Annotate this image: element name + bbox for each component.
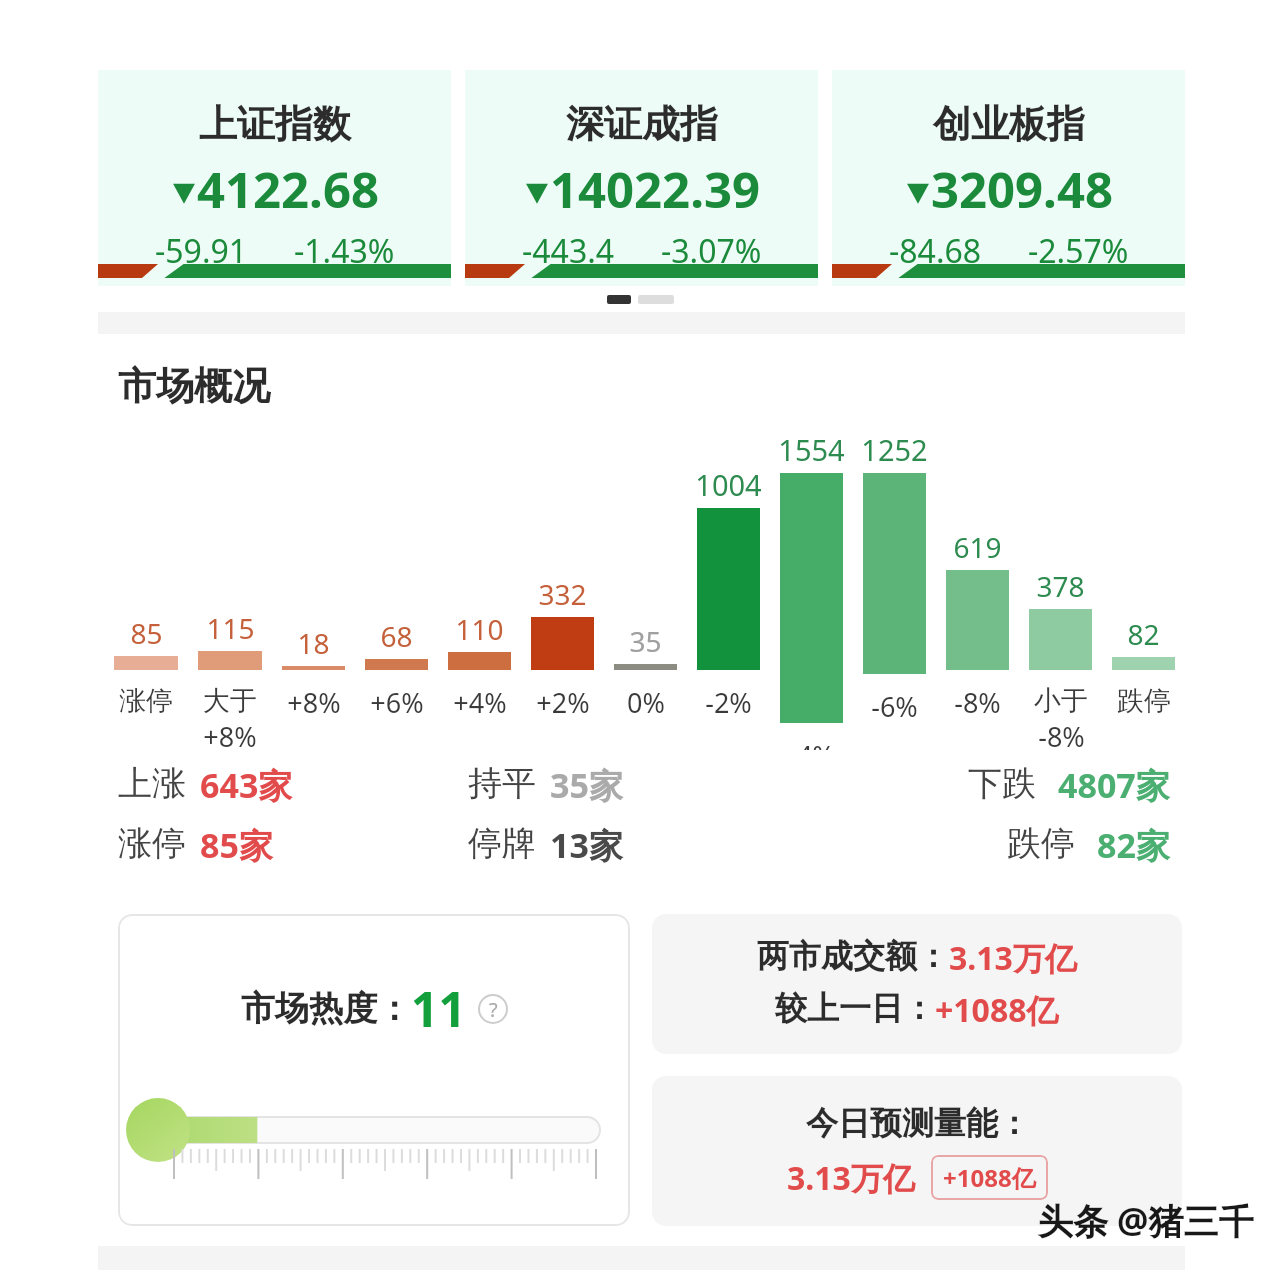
staticText: +4%: [453, 684, 507, 721]
staticText: 1252: [861, 430, 928, 469]
staticText: 82: [1127, 615, 1160, 653]
staticText: +6%: [370, 684, 424, 721]
staticText: 110: [455, 610, 504, 648]
button[interactable]: 上证指数: [98, 70, 451, 286]
staticText: 1554: [778, 430, 845, 469]
staticText: 市场热度：: [241, 987, 411, 1030]
staticText: -2.57%: [1028, 229, 1129, 273]
staticText: 35: [629, 622, 662, 660]
button[interactable]: 今日预测量能：: [652, 1076, 1182, 1226]
staticText: 13家: [550, 822, 623, 868]
staticText: 深证成指: [566, 100, 718, 148]
staticText: 378: [1036, 567, 1085, 605]
staticText: +2%: [536, 684, 590, 721]
staticText: 11: [411, 976, 466, 1041]
staticText: 两市成交额：: [757, 936, 949, 976]
staticText: 停牌: [468, 822, 536, 865]
staticText: 14022.39: [550, 156, 760, 223]
staticText: -6%: [871, 688, 918, 725]
staticText: 3.13万亿: [787, 1156, 915, 1200]
staticText: 0: [174, 1215, 314, 1226]
staticText: 3.13万亿: [949, 936, 1077, 980]
staticText: 4807家: [1058, 762, 1170, 808]
staticText: +8%: [203, 718, 257, 750]
button[interactable]: 两市成交额：: [652, 914, 1182, 1054]
staticText: -2%: [705, 684, 752, 721]
staticText: 跌停: [1007, 822, 1075, 865]
staticText: -3.07%: [661, 229, 762, 273]
staticText: -84.68: [889, 229, 982, 273]
staticText: 50: [314, 1215, 455, 1226]
staticText: 市场概况: [118, 362, 270, 410]
button[interactable]: 深证成指: [465, 70, 818, 286]
staticText: 今日预测量能：: [806, 1103, 1030, 1143]
staticText: 68: [380, 617, 413, 655]
staticText: 18: [297, 624, 330, 662]
staticText: 创业板指: [933, 100, 1085, 148]
staticText: 332: [538, 575, 587, 613]
staticText: -59.91: [155, 229, 248, 273]
button[interactable]: 市场热度：: [118, 914, 630, 1226]
staticText: 100: [455, 1215, 596, 1226]
staticText: 115: [206, 609, 255, 647]
staticText: 4122.68: [197, 156, 379, 223]
staticText: ?: [489, 996, 498, 1023]
staticText: 跌停: [1117, 684, 1171, 718]
staticText: +1088亿: [943, 1161, 1036, 1194]
staticText: 0%: [627, 684, 665, 721]
staticText: +8%: [287, 684, 341, 721]
staticText: 涨停: [118, 822, 186, 865]
staticText: +1088亿: [935, 988, 1059, 1032]
staticText: 85: [130, 614, 163, 652]
staticText: -8%: [1038, 718, 1085, 750]
staticText: 持平: [468, 762, 536, 805]
staticText: 涨停: [119, 684, 173, 718]
staticText: 较上一日：: [775, 988, 935, 1028]
staticText: 3209.48: [931, 156, 1113, 223]
button[interactable]: 创业板指: [832, 70, 1185, 286]
staticText: -4%: [788, 737, 835, 750]
staticText: 82家: [1097, 822, 1170, 868]
staticText: 643家: [200, 762, 293, 808]
staticText: -8%: [954, 684, 1001, 721]
staticText: 35家: [550, 762, 623, 808]
staticText: 小于: [1034, 684, 1088, 718]
staticText: 上证指数: [199, 100, 351, 148]
staticText: -443.4: [522, 229, 615, 273]
button[interactable]: 帮助: [478, 994, 508, 1024]
staticText: 上涨: [118, 762, 186, 805]
staticText: 大于: [203, 684, 257, 718]
staticText: 1004: [695, 465, 762, 504]
staticText: -1.43%: [294, 229, 395, 273]
staticText: 619: [953, 528, 1002, 566]
staticText: 下跌: [968, 762, 1036, 805]
staticText: 头条 @猪三千: [1038, 1197, 1254, 1245]
staticText: 85家: [200, 822, 273, 868]
